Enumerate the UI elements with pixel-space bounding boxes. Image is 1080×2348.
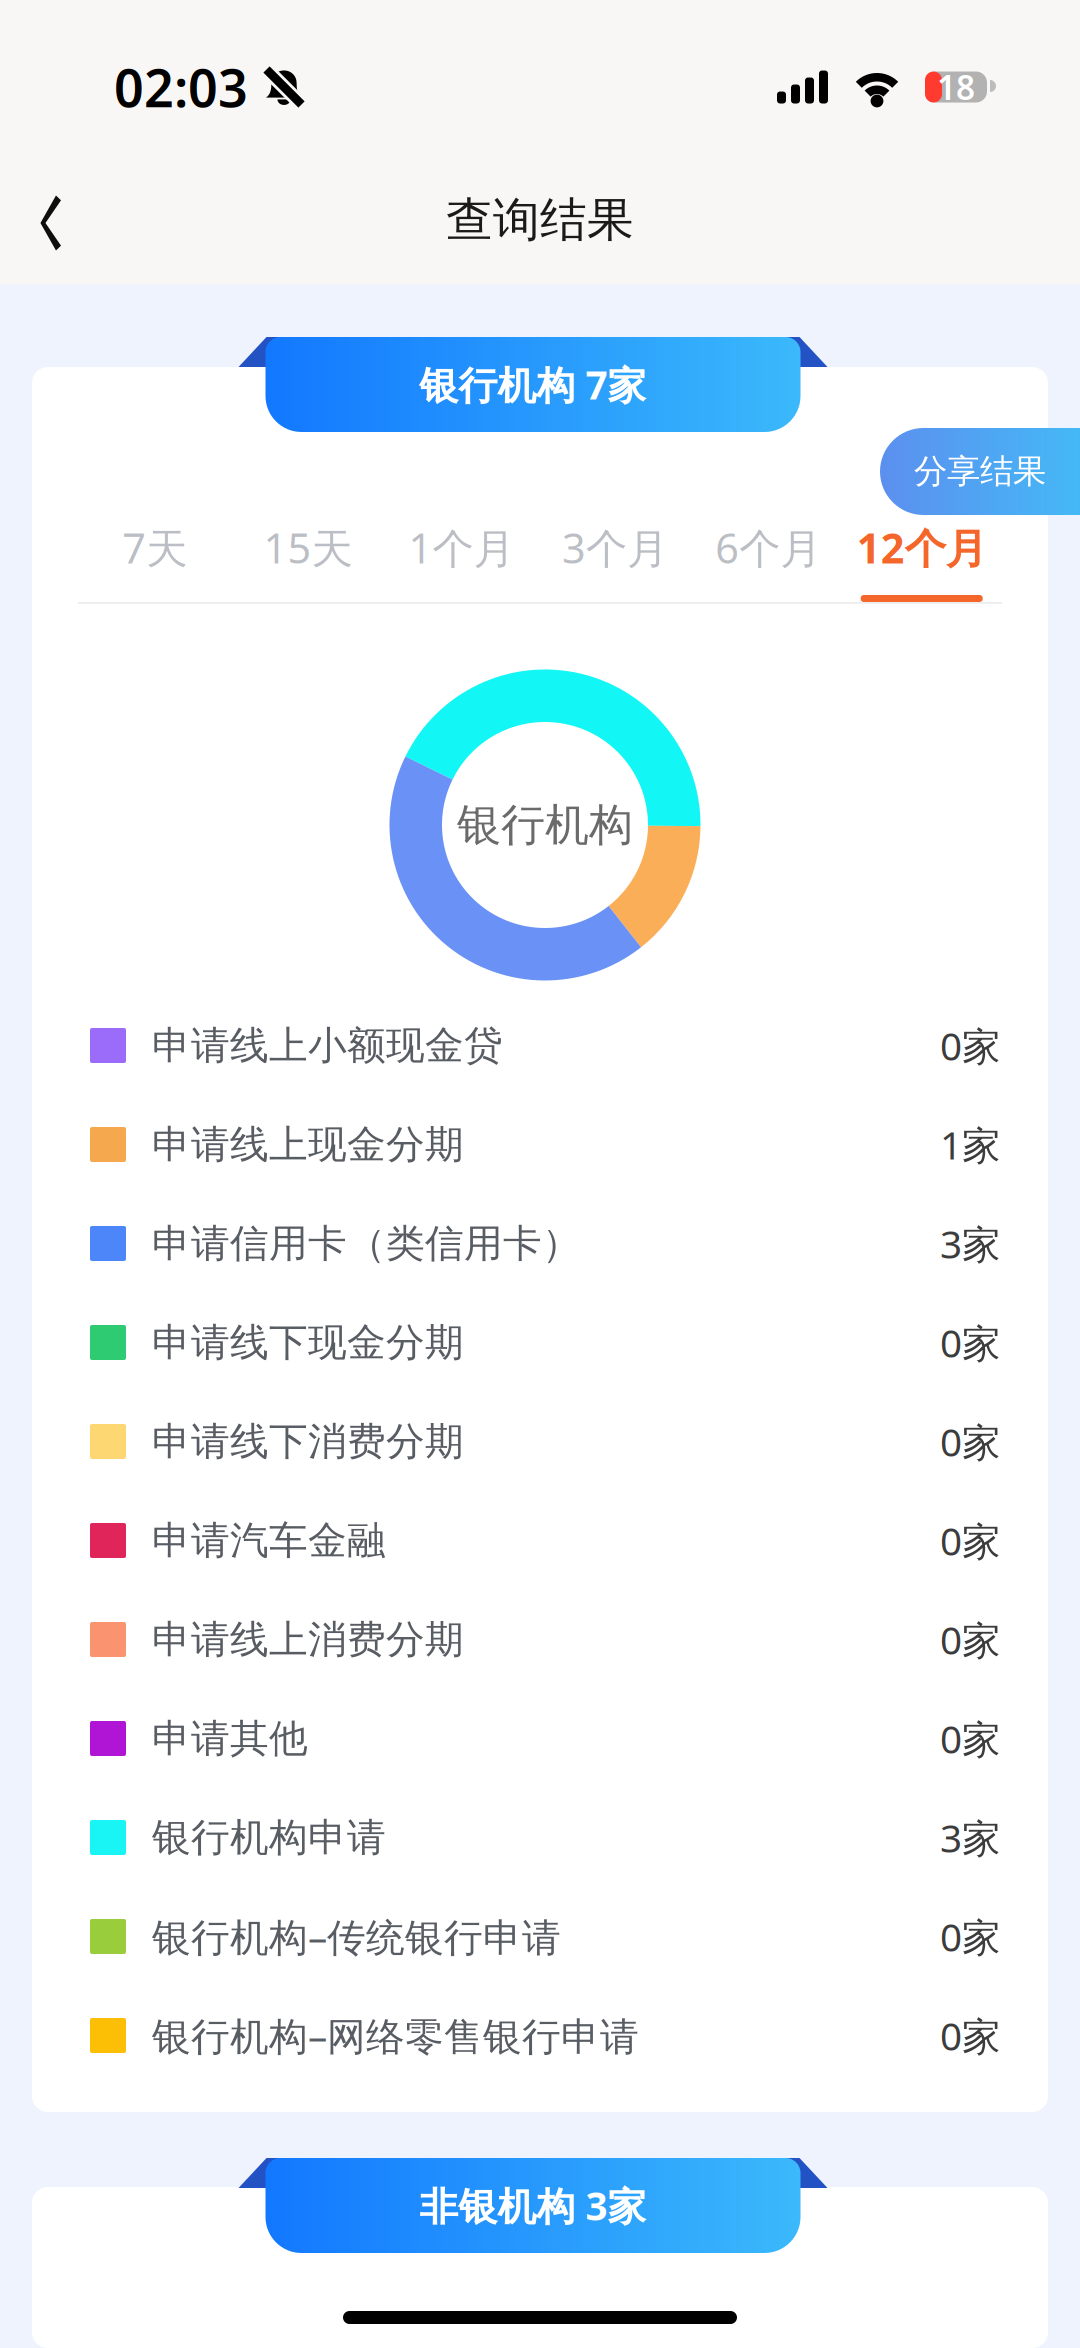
staticText: 申请其他 bbox=[152, 1715, 308, 1762]
staticText: 02:03 bbox=[114, 52, 248, 122]
staticText: 3家 bbox=[940, 1218, 1001, 1269]
button[interactable]: 3个月 bbox=[538, 492, 692, 602]
staticText: 申请线下消费分期 bbox=[152, 1418, 464, 1465]
staticText: 申请线下现金分期 bbox=[152, 1319, 464, 1366]
staticText: 申请线上小额现金贷 bbox=[152, 1022, 503, 1069]
staticText: 1家 bbox=[940, 1119, 1001, 1170]
staticText: 15天 bbox=[264, 520, 353, 575]
staticText: 3个月 bbox=[562, 520, 668, 575]
staticText: 申请汽车金融 bbox=[152, 1517, 386, 1564]
staticText: 0家 bbox=[940, 1020, 1001, 1071]
staticText: 0家 bbox=[940, 1515, 1001, 1566]
staticText: 0家 bbox=[940, 2010, 1001, 2061]
staticText: 7天 bbox=[122, 520, 187, 575]
staticText: 查询结果 bbox=[446, 191, 634, 249]
button[interactable]: 15天 bbox=[231, 492, 385, 602]
staticText: 银行机构–网络零售银行申请 bbox=[152, 2010, 639, 2061]
staticText: 银行机构申请 bbox=[152, 1814, 386, 1861]
staticText: 1个月 bbox=[408, 520, 514, 575]
button[interactable]: 6个月 bbox=[692, 492, 845, 602]
button[interactable]: 分享结果 bbox=[880, 428, 1080, 515]
staticText: 0家 bbox=[940, 1317, 1001, 1368]
staticText: 3家 bbox=[940, 1812, 1001, 1863]
staticText: 申请线上消费分期 bbox=[152, 1616, 464, 1663]
staticText: 分享结果 bbox=[914, 451, 1046, 492]
button[interactable]: 返回 bbox=[0, 168, 103, 278]
staticText: 银行机构–传统银行申请 bbox=[152, 1911, 561, 1962]
staticText: 18 bbox=[937, 65, 975, 109]
button[interactable]: 12个月 bbox=[845, 492, 998, 602]
staticText: 0家 bbox=[940, 1614, 1001, 1665]
staticText: 申请线上现金分期 bbox=[152, 1121, 464, 1168]
button[interactable]: 7天 bbox=[78, 492, 231, 602]
staticText: 申请信用卡（类信用卡） bbox=[152, 1220, 581, 1267]
staticText: 0家 bbox=[940, 1713, 1001, 1764]
staticText: 12个月 bbox=[857, 520, 987, 575]
staticText: 银行机构 7家 bbox=[419, 359, 646, 410]
staticText: 6个月 bbox=[715, 520, 821, 575]
staticText: 银行机构 bbox=[457, 798, 633, 852]
staticText: 非银机构 3家 bbox=[419, 2180, 646, 2231]
staticText: 0家 bbox=[940, 1911, 1001, 1962]
staticText: 0家 bbox=[940, 1416, 1001, 1467]
button[interactable]: 1个月 bbox=[385, 492, 538, 602]
